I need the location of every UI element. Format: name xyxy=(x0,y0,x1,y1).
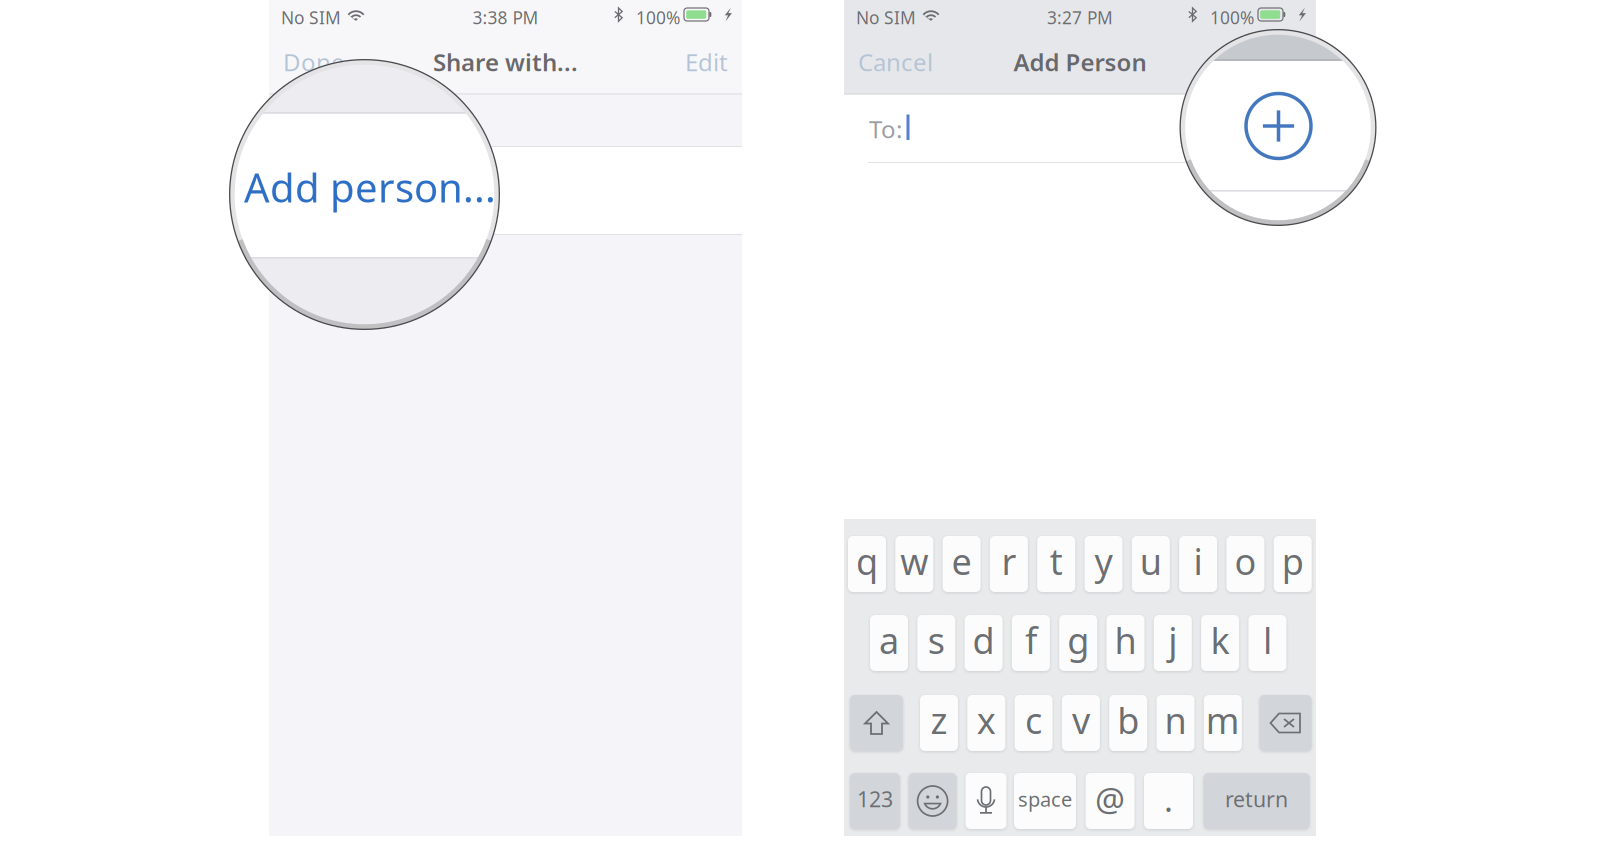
button[interactable]: Delete xyxy=(1259,695,1311,751)
staticText: m xyxy=(1206,696,1240,744)
button[interactable]: g xyxy=(1059,615,1097,671)
button[interactable]: Done xyxy=(269,30,379,94)
staticText: y xyxy=(1094,537,1112,585)
staticText: 3:38 PM xyxy=(472,6,538,29)
staticText: v xyxy=(1072,696,1090,744)
button[interactable]: v xyxy=(1062,695,1100,751)
staticText: 100% xyxy=(636,6,680,29)
button[interactable]: b xyxy=(1109,695,1147,751)
button[interactable]: l xyxy=(1248,615,1286,671)
button[interactable]: m xyxy=(1204,695,1242,751)
button[interactable]: Dictate xyxy=(965,773,1006,829)
staticText: b xyxy=(1117,696,1139,744)
staticText: q xyxy=(856,537,878,585)
staticText: return xyxy=(1225,785,1288,813)
button[interactable]: h xyxy=(1106,615,1144,671)
button[interactable]: Shift xyxy=(850,695,903,751)
staticText: Add person... xyxy=(287,175,436,206)
staticText: No SIM xyxy=(281,6,341,29)
button[interactable]: r xyxy=(990,536,1028,592)
staticText: i xyxy=(1194,537,1203,585)
staticText: No SIM xyxy=(856,6,916,29)
button[interactable]: u xyxy=(1132,536,1170,592)
staticText: @ xyxy=(1095,777,1125,821)
button[interactable]: e xyxy=(943,536,981,592)
button[interactable]: j xyxy=(1154,615,1192,671)
staticText: Cancel xyxy=(858,46,933,78)
button[interactable]: s xyxy=(917,615,955,671)
button[interactable]: p xyxy=(1274,536,1312,592)
button[interactable]: f xyxy=(1012,615,1050,671)
button[interactable]: return xyxy=(1204,773,1310,829)
staticText: To: xyxy=(869,113,902,145)
staticText: t xyxy=(1050,537,1063,585)
button[interactable]: o xyxy=(1226,536,1264,592)
staticText: . xyxy=(1164,777,1173,821)
button[interactable]: d xyxy=(965,615,1003,671)
button[interactable]: t xyxy=(1037,536,1075,592)
staticText: g xyxy=(1067,616,1089,664)
button[interactable]: z xyxy=(920,695,958,751)
staticText: k xyxy=(1211,616,1230,664)
staticText: Done xyxy=(283,46,345,78)
button[interactable]: . xyxy=(1144,773,1193,829)
button[interactable]: i xyxy=(1179,536,1217,592)
button[interactable]: y xyxy=(1084,536,1122,592)
button[interactable]: x xyxy=(967,695,1005,751)
staticText: 100% xyxy=(1210,6,1254,29)
button[interactable]: n xyxy=(1156,695,1194,751)
staticText: x xyxy=(977,696,996,744)
staticText: s xyxy=(928,616,945,664)
button[interactable]: Edit xyxy=(632,30,742,94)
button[interactable]: a xyxy=(870,615,908,671)
staticText: z xyxy=(930,696,947,744)
staticText: h xyxy=(1114,616,1136,664)
staticText: n xyxy=(1164,696,1186,744)
staticText: o xyxy=(1234,537,1256,585)
staticText: Add person... xyxy=(244,160,496,213)
button[interactable]: Add person... xyxy=(269,147,760,234)
staticText: Add Person xyxy=(1013,46,1146,78)
staticText: p xyxy=(1282,537,1304,585)
staticText: f xyxy=(1025,616,1037,664)
staticText: Share with... xyxy=(433,46,578,78)
button[interactable]: w xyxy=(895,536,933,592)
staticText: d xyxy=(973,616,995,664)
button[interactable]: Cancel xyxy=(844,30,968,94)
staticText: 123 xyxy=(857,785,893,813)
staticText: w xyxy=(900,537,928,585)
button[interactable]: Emoji xyxy=(909,773,957,829)
staticText: r xyxy=(1001,537,1016,585)
staticText: a xyxy=(879,616,899,664)
button[interactable]: q xyxy=(848,536,886,592)
staticText: e xyxy=(952,537,972,585)
button[interactable]: space xyxy=(1014,773,1076,829)
staticText: c xyxy=(1025,696,1042,744)
staticText: space xyxy=(1018,786,1072,812)
button[interactable]: c xyxy=(1015,695,1053,751)
staticText: j xyxy=(1168,616,1177,664)
button[interactable]: k xyxy=(1201,615,1239,671)
staticText: Edit xyxy=(685,46,728,78)
button[interactable]: @ xyxy=(1086,773,1135,829)
staticText: u xyxy=(1140,537,1162,585)
button[interactable]: 123 xyxy=(850,773,900,829)
staticText: l xyxy=(1263,616,1272,664)
staticText: 3:27 PM xyxy=(1047,6,1113,29)
